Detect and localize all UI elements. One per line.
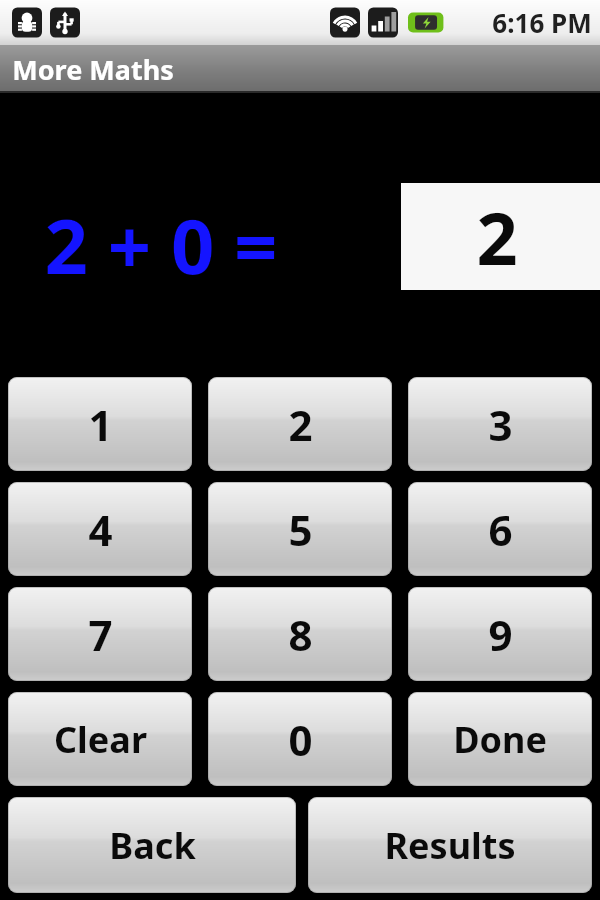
staticText: More Maths bbox=[12, 51, 174, 88]
button[interactable]: Done bbox=[408, 692, 592, 786]
staticText: 3 bbox=[488, 396, 513, 453]
staticText: Done bbox=[453, 715, 547, 764]
button[interactable]: 4 bbox=[8, 482, 192, 576]
staticText: 1 bbox=[88, 396, 113, 453]
button[interactable]: Results bbox=[308, 797, 592, 893]
staticText: 2 bbox=[288, 396, 313, 453]
button[interactable]: 2 bbox=[401, 183, 600, 290]
button[interactable]: Back bbox=[8, 797, 296, 893]
staticText: 0 bbox=[288, 711, 313, 768]
button[interactable]: 0 bbox=[208, 692, 392, 786]
staticText: 2 + 0 = bbox=[44, 193, 278, 297]
staticText: Results bbox=[384, 821, 516, 870]
staticText: 4 bbox=[88, 501, 113, 558]
button[interactable]: 9 bbox=[408, 587, 592, 681]
staticText: 2 bbox=[476, 188, 518, 286]
button[interactable]: 2 bbox=[208, 377, 392, 471]
staticText: Back bbox=[109, 821, 196, 870]
button[interactable]: 6 bbox=[408, 482, 592, 576]
staticText: 7 bbox=[88, 606, 113, 663]
button[interactable]: 5 bbox=[208, 482, 392, 576]
staticText: 5 bbox=[288, 501, 313, 558]
staticText: 8 bbox=[288, 606, 313, 663]
button[interactable]: 7 bbox=[8, 587, 192, 681]
staticText: 6 bbox=[488, 501, 513, 558]
staticText: Clear bbox=[54, 715, 147, 764]
button[interactable]: 1 bbox=[8, 377, 192, 471]
button[interactable]: 8 bbox=[208, 587, 392, 681]
staticText: 9 bbox=[488, 606, 513, 663]
staticText: 6:16 PM bbox=[492, 5, 592, 40]
button[interactable]: 3 bbox=[408, 377, 592, 471]
button[interactable]: Clear bbox=[8, 692, 192, 786]
